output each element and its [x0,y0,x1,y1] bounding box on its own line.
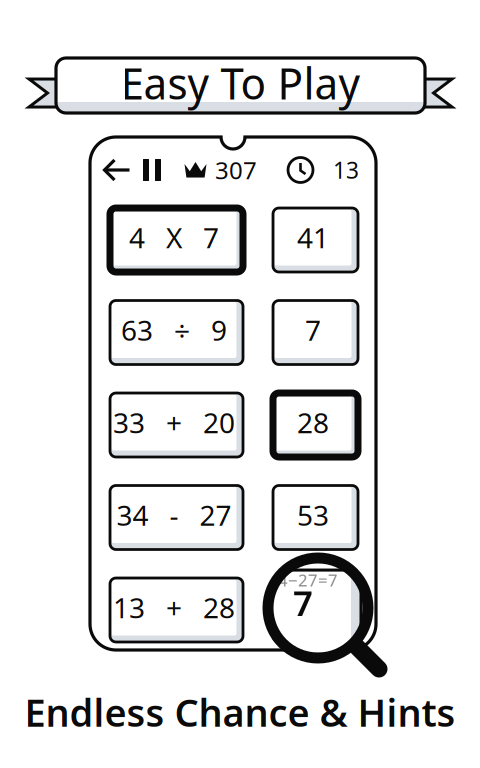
staticText: 4 X 7 [129,218,219,256]
staticText: Endless Chance & Hints [24,686,455,738]
staticText: 307 [215,154,257,186]
button[interactable]: 28 [273,393,358,457]
button[interactable]: 41 [273,208,358,272]
staticText: Easy To Play [120,52,360,112]
staticText: 7 [305,311,321,349]
staticText: 53 [297,496,329,534]
button[interactable]: 63 ÷ 9 [110,300,243,364]
button[interactable] [273,578,358,642]
button[interactable]: 33 + 20 [110,393,243,457]
staticText: 28 [297,403,329,441]
button[interactable]: Back [104,159,128,181]
button[interactable]: Pause [143,159,161,181]
staticText: 41 [297,218,329,256]
staticText: 34−27=7 [268,569,338,591]
staticText: 34 - 27 [116,496,231,534]
button[interactable]: 4 X 7 [110,208,243,272]
staticText: 63 ÷ 9 [121,311,227,349]
button[interactable]: 53 [273,485,358,549]
button[interactable]: 13 + 28 [110,578,243,642]
staticText: 33 + 20 [113,403,235,441]
staticText: 13 [333,155,359,185]
staticText: 13 + 28 [113,588,235,626]
button[interactable]: 34 - 27 [110,485,243,549]
button[interactable]: 7 [273,300,358,364]
staticText: 7 [293,579,313,627]
